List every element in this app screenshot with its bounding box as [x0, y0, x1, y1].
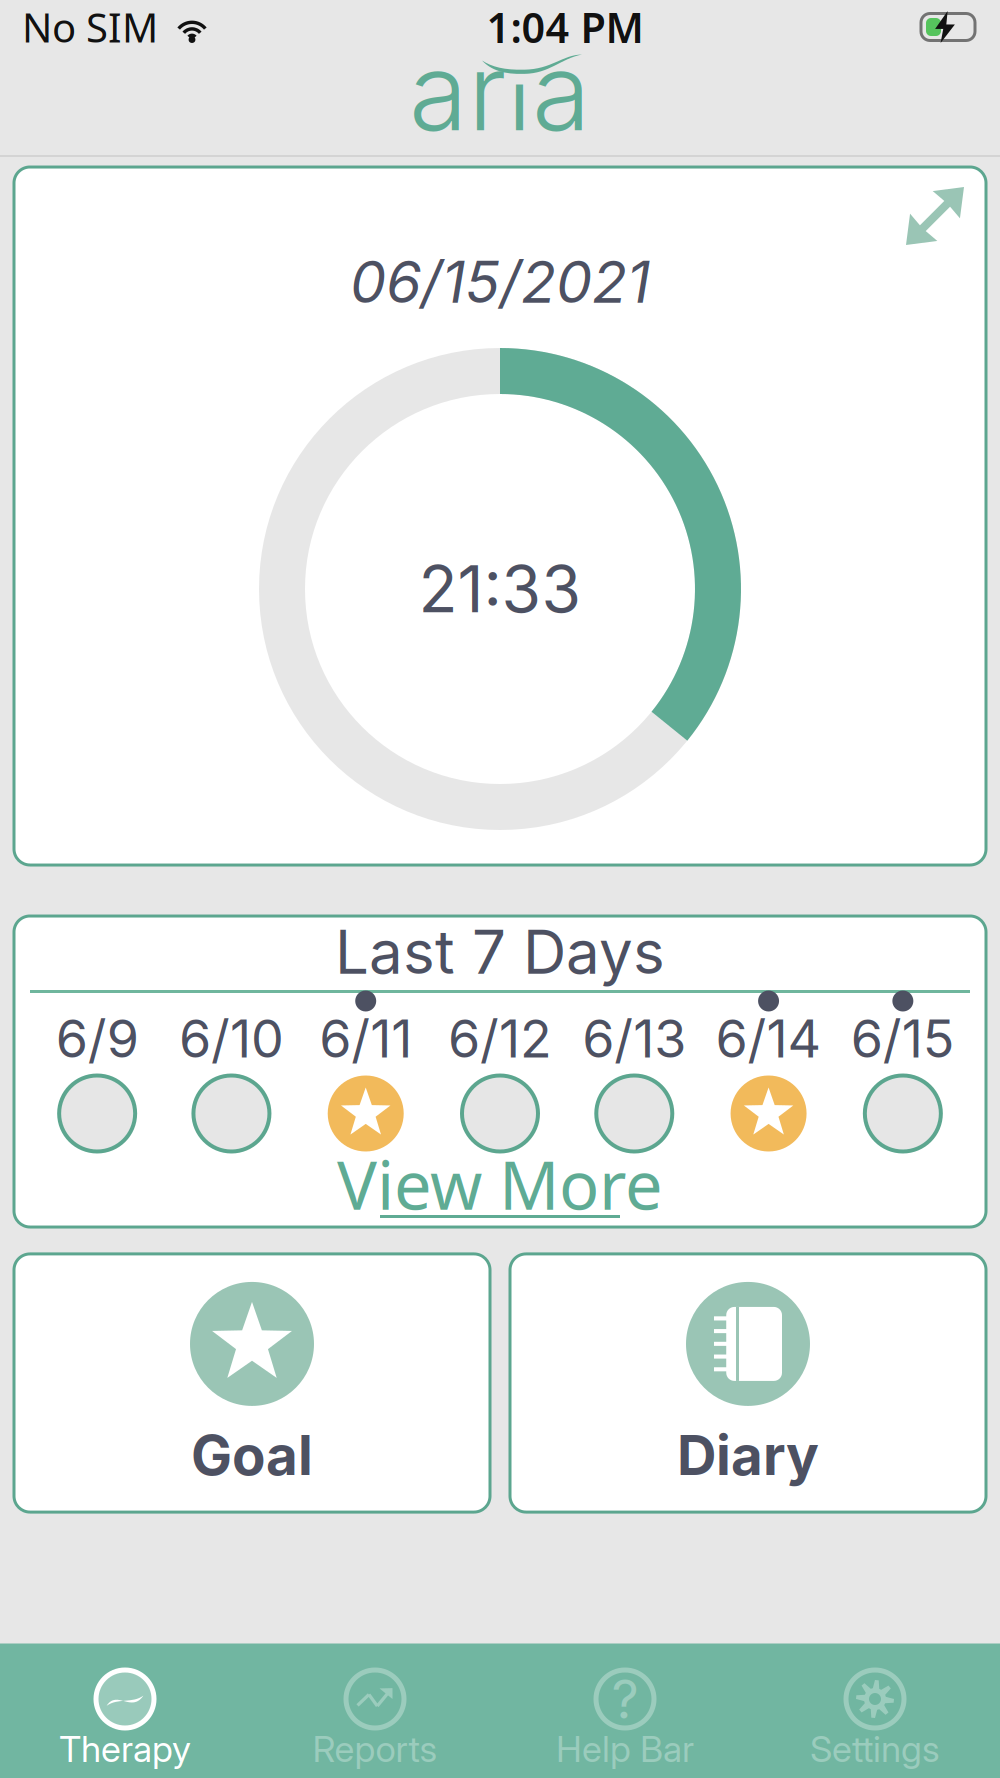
button[interactable]: Reports	[250, 1659, 500, 1778]
staticText: No SIM	[22, 0, 158, 53]
staticText: View More	[337, 1140, 663, 1228]
staticText: 6/12	[448, 1007, 552, 1070]
staticText: 6/15	[851, 1007, 955, 1070]
staticText: aria	[409, 27, 591, 156]
button[interactable]: Goal	[14, 1254, 490, 1512]
button[interactable]: ?	[500, 1659, 750, 1778]
button[interactable]: View More	[30, 1153, 970, 1229]
staticText: 6/10	[179, 1007, 284, 1070]
staticText: Therapy	[59, 1727, 191, 1771]
staticText: Diary	[677, 1422, 819, 1488]
staticText: Last 7 Days	[335, 916, 665, 988]
button[interactable]: Diary	[510, 1254, 986, 1512]
staticText: Goal	[191, 1422, 313, 1488]
button[interactable]: Settings	[750, 1659, 1000, 1778]
staticText: 06/15/2021	[350, 247, 650, 317]
staticText: 6/14	[716, 1007, 822, 1070]
button[interactable]: Expand	[906, 167, 986, 245]
button[interactable]: Therapy	[0, 1659, 250, 1778]
staticText: 6/9	[56, 1007, 139, 1070]
staticText: Settings	[810, 1727, 940, 1771]
staticText: 1:04 PM	[486, 0, 643, 54]
staticText: 6/13	[582, 1007, 686, 1070]
staticText: Help Bar	[556, 1727, 694, 1771]
staticText: 21:33	[418, 550, 581, 628]
staticText: 6/11	[319, 1007, 412, 1070]
staticText: Reports	[312, 1727, 437, 1771]
staticText: ?	[611, 1667, 638, 1731]
